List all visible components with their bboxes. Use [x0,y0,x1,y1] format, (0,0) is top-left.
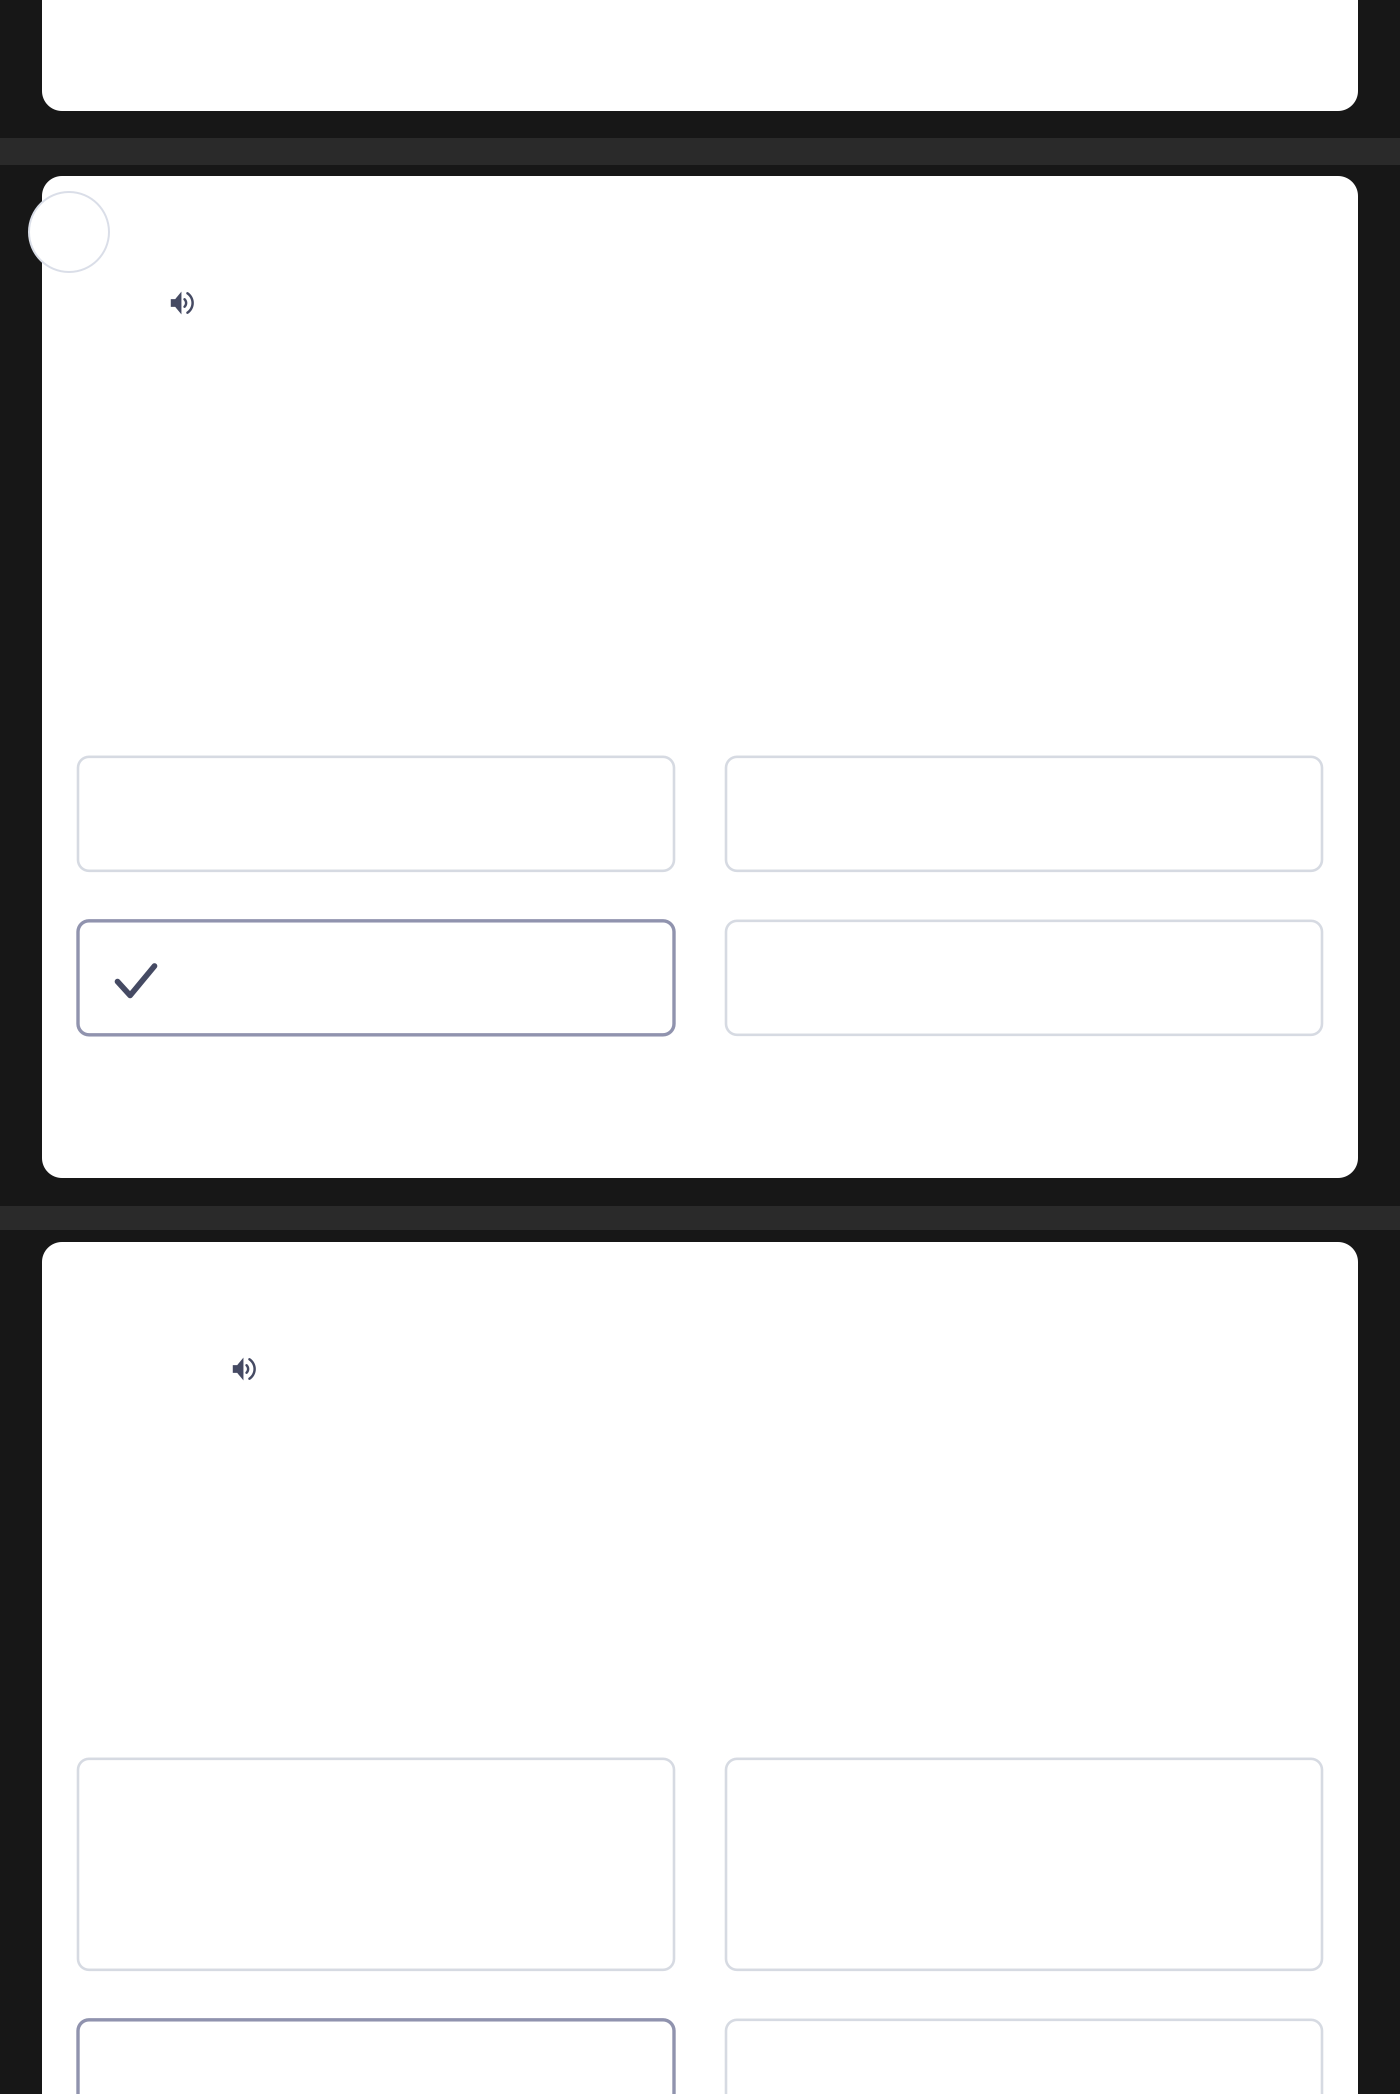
button[interactable]: good night [78,2020,674,2094]
button[interactable]: the water [726,757,1322,871]
button[interactable]: good morning [78,1759,674,1970]
button[interactable]: good afternoon [726,2020,1322,2094]
button[interactable]: good evening [726,1759,1322,1970]
button[interactable]: the juice [726,921,1322,1035]
button[interactable]: the milk [78,921,674,1035]
button[interactable]: Play pronunciation [42,1242,1358,1382]
button[interactable]: the bread [78,757,674,871]
button[interactable]: Play pronunciation [42,176,1358,316]
